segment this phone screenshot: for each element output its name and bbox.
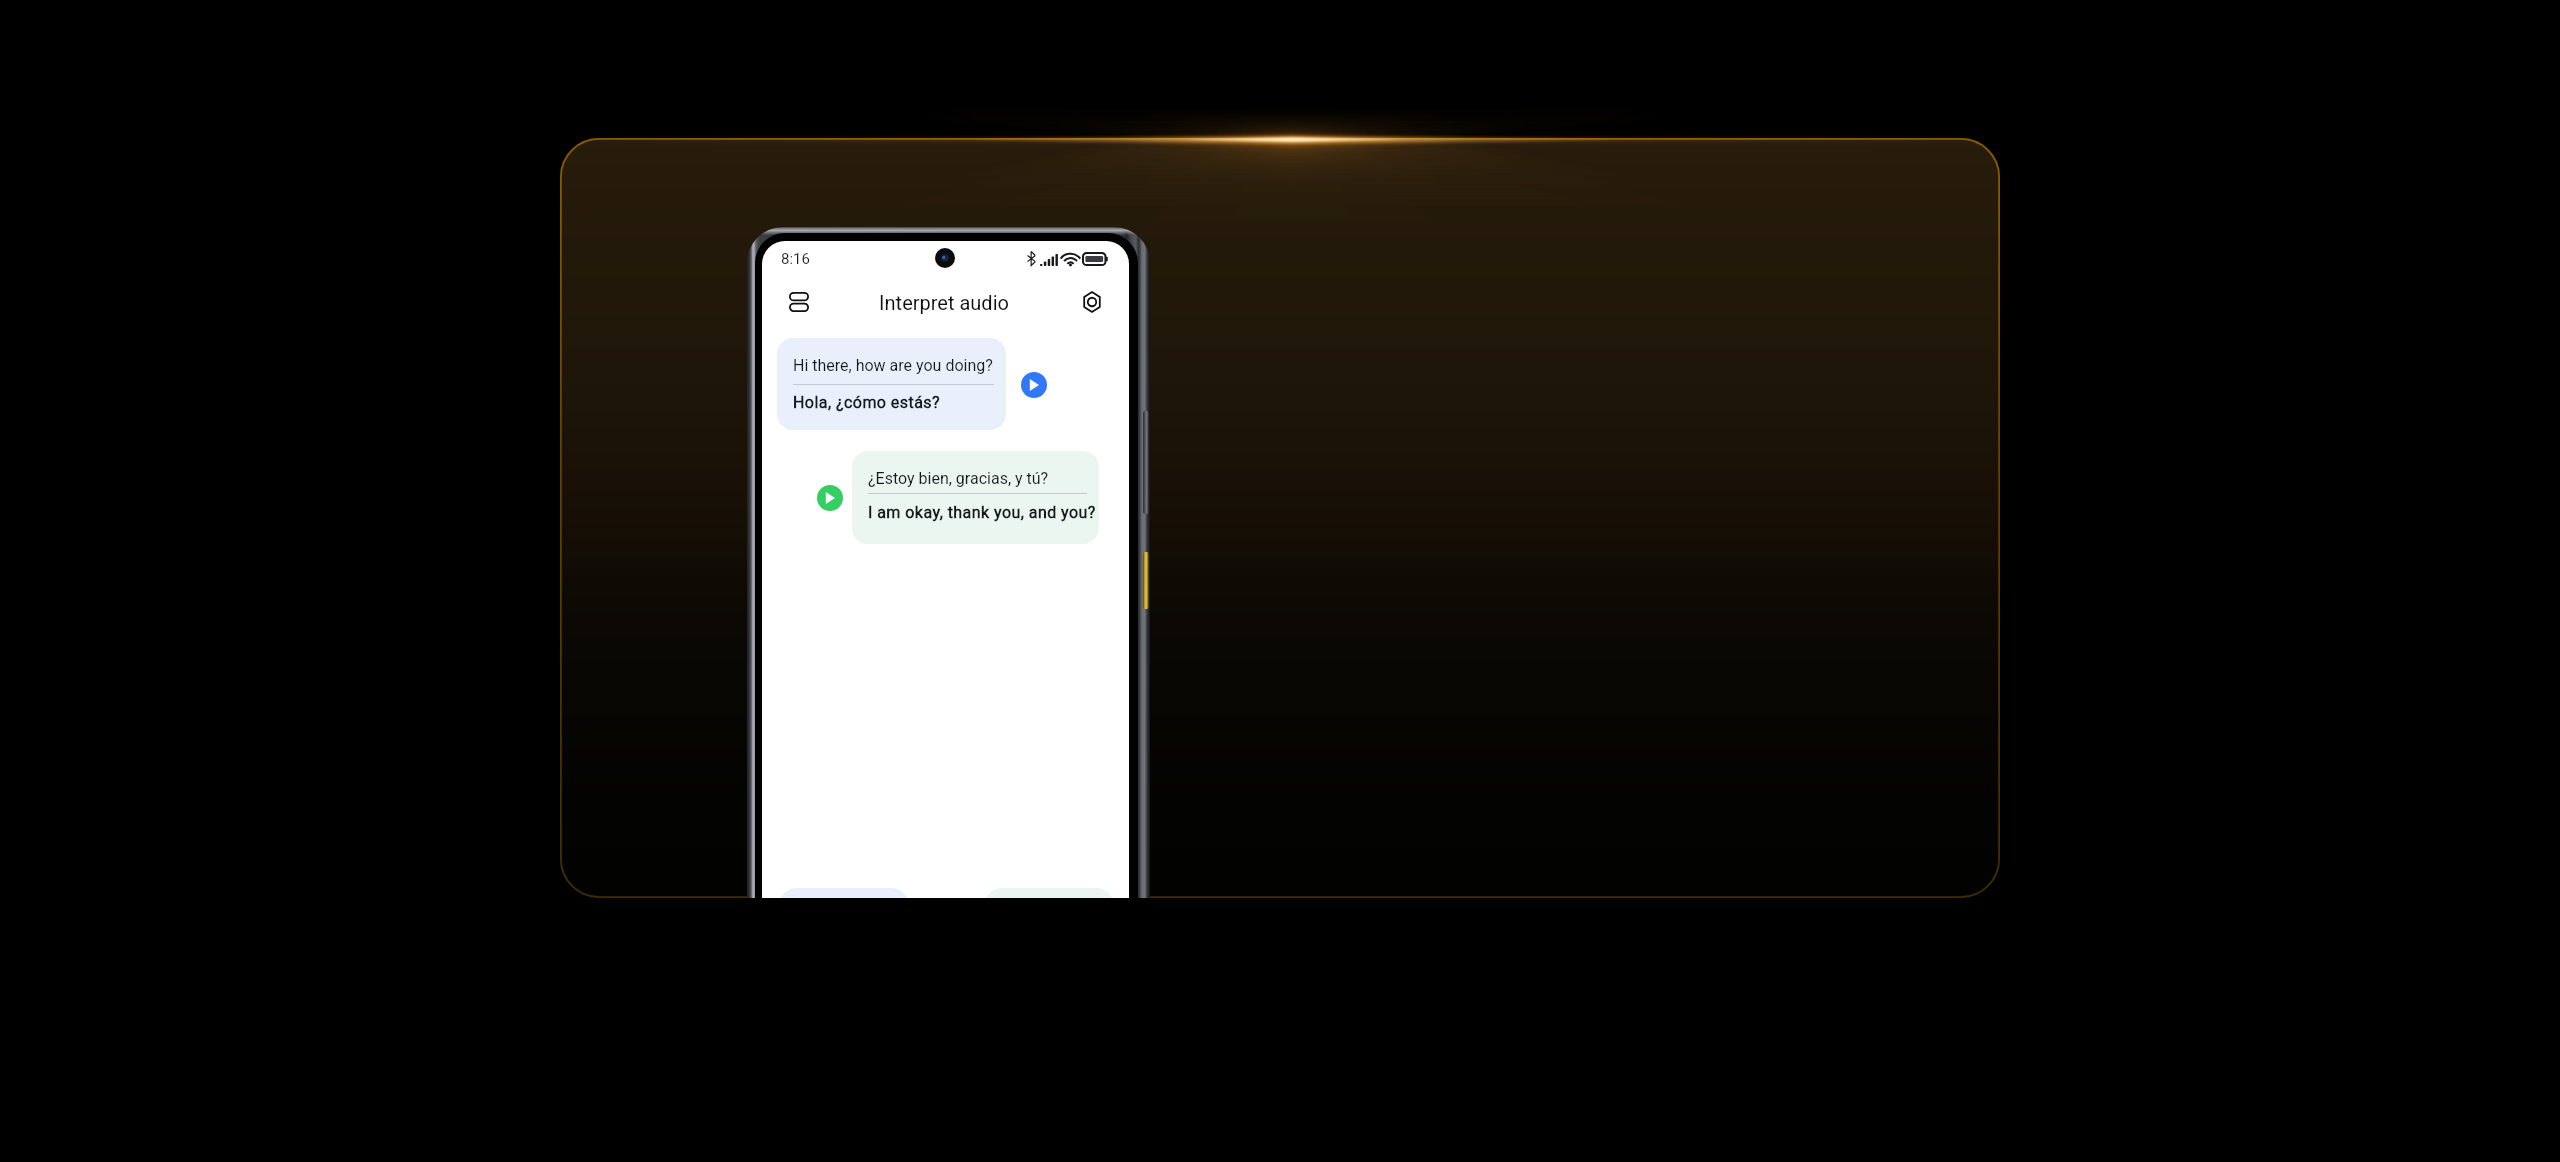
staticText: Hola, ¿cómo estás? (793, 393, 941, 412)
button[interactable]: Speak English (779, 888, 909, 898)
staticText: ¿Estoy bien, gracias, y tú? (868, 469, 1049, 488)
button[interactable]: Conversation history (779, 282, 819, 322)
button[interactable]: Play audio (817, 485, 843, 511)
button[interactable]: Settings (1072, 282, 1112, 322)
button[interactable]: Hi there, how are you doing? (777, 338, 1006, 430)
button[interactable]: Play audio (1021, 372, 1047, 398)
button[interactable]: Speak Spanish (984, 888, 1114, 898)
button[interactable]: Power (1143, 552, 1149, 609)
staticText: 8:16 (781, 250, 810, 268)
staticText: I am okay, thank you, and you? (868, 503, 1096, 522)
button[interactable]: Volume (1143, 411, 1149, 514)
staticText: Hi there, how are you doing? (793, 356, 993, 375)
staticText: Interpret audio (879, 291, 1009, 314)
button[interactable]: ¿Estoy bien, gracias, y tú? (852, 451, 1099, 544)
